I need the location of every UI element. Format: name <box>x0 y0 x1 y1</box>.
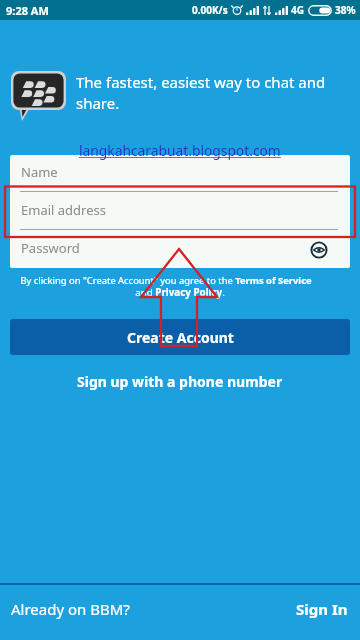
staticText: Password <box>21 239 80 257</box>
staticText: Create Account <box>127 328 234 347</box>
staticText: 0.00K/s <box>192 3 228 17</box>
staticText: langkahcarabuat.blogspot.com <box>79 141 281 160</box>
button[interactable]: Show password <box>307 238 331 262</box>
staticText: Already on BBM? <box>11 599 130 619</box>
staticText: By clicking on "Create Account" you agre… <box>0 274 346 287</box>
staticText: Name <box>21 163 58 181</box>
button[interactable]: Email address <box>10 203 350 241</box>
staticText: 38% <box>335 3 356 17</box>
button[interactable]: Password <box>10 241 350 268</box>
staticText: and Privacy Policy. <box>0 286 360 299</box>
button[interactable]: Sign up with a phone number <box>69 368 291 395</box>
staticText: 9:28 AM <box>6 3 49 18</box>
button[interactable]: Create Account <box>10 319 350 355</box>
staticText: Sign up with a phone number <box>77 372 283 391</box>
staticText: Email address <box>21 201 106 219</box>
staticText: 4G <box>291 3 304 17</box>
staticText: Sign In <box>296 599 348 619</box>
button[interactable]: Sign In <box>290 591 354 627</box>
button[interactable]: Already on BBM? <box>5 591 136 627</box>
staticText: The fastest, easiest way to chat and sha… <box>76 72 346 114</box>
button[interactable]: Name <box>10 165 350 203</box>
